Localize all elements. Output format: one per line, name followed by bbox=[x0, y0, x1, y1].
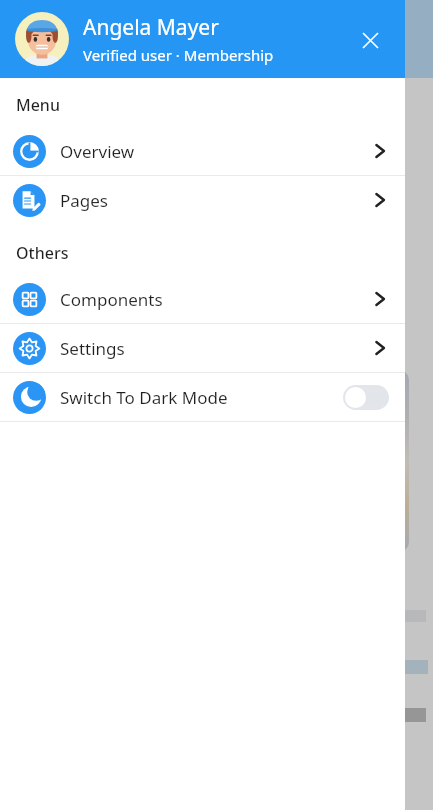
staticText: Others bbox=[16, 242, 69, 264]
button[interactable]: Switch to dark mode bbox=[343, 385, 389, 410]
button[interactable]: Overview bbox=[0, 127, 405, 175]
button[interactable]: Components bbox=[0, 275, 405, 323]
staticText: Verified user · Membership bbox=[83, 45, 274, 65]
staticText: Switch To Dark Mode bbox=[60, 386, 228, 409]
button[interactable]: Pages bbox=[0, 176, 405, 224]
staticText: Components bbox=[60, 288, 163, 311]
staticText: Settings bbox=[60, 337, 125, 360]
button[interactable]: Switch To Dark Mode bbox=[0, 373, 405, 421]
button[interactable]: Close bbox=[351, 21, 389, 59]
button[interactable]: Settings bbox=[0, 324, 405, 372]
staticText: Overview bbox=[60, 140, 135, 163]
staticText: Menu bbox=[16, 94, 60, 116]
staticText: Pages bbox=[60, 189, 109, 212]
staticText: Angela Mayer bbox=[83, 13, 219, 42]
